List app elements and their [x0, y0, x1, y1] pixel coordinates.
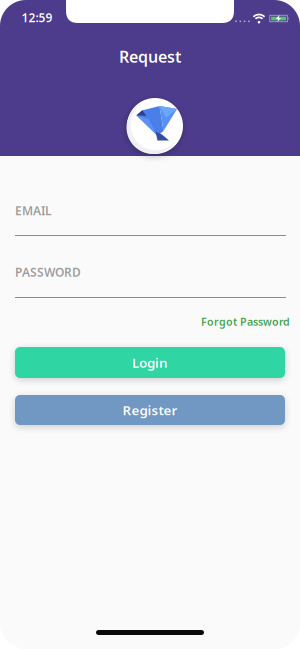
staticText: Forgot Password — [201, 314, 290, 329]
staticText: Register — [122, 401, 177, 419]
staticText: EMAIL — [15, 202, 52, 218]
button[interactable]: Register — [15, 395, 285, 425]
staticText: Login — [132, 354, 168, 371]
staticText: 12:59 — [21, 9, 52, 25]
button[interactable]: Forgot Password — [10, 314, 290, 329]
staticText: Request — [119, 46, 181, 67]
staticText: PASSWORD — [15, 264, 81, 280]
button[interactable]: Login — [15, 347, 285, 378]
